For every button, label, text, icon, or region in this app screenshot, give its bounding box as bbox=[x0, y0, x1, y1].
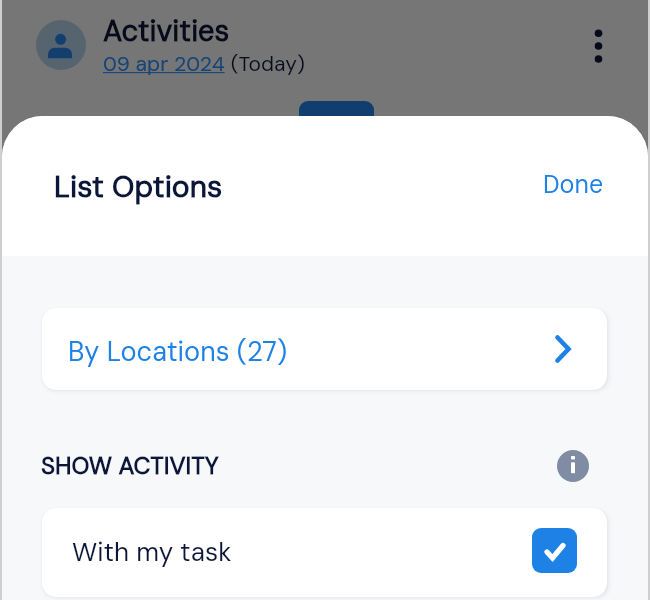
staticText: Activities bbox=[103, 12, 230, 50]
button[interactable]: Info bbox=[557, 450, 589, 482]
button[interactable]: By Locations (27) bbox=[42, 308, 607, 390]
staticText: List Options bbox=[54, 167, 223, 206]
staticText: (Today) bbox=[225, 50, 305, 77]
staticText: Done bbox=[543, 168, 604, 201]
button[interactable]: With my task bbox=[42, 508, 607, 597]
button[interactable]: More options bbox=[576, 17, 620, 75]
staticText: With my task bbox=[72, 535, 232, 569]
button[interactable]: 09 apr 2024 bbox=[103, 50, 225, 77]
button[interactable]: With my task checkbox bbox=[532, 528, 577, 573]
staticText: By Locations (27) bbox=[68, 334, 287, 369]
button[interactable]: Done bbox=[533, 163, 614, 206]
staticText: SHOW ACTIVITY bbox=[41, 450, 219, 481]
button[interactable]: Profile bbox=[36, 20, 86, 70]
